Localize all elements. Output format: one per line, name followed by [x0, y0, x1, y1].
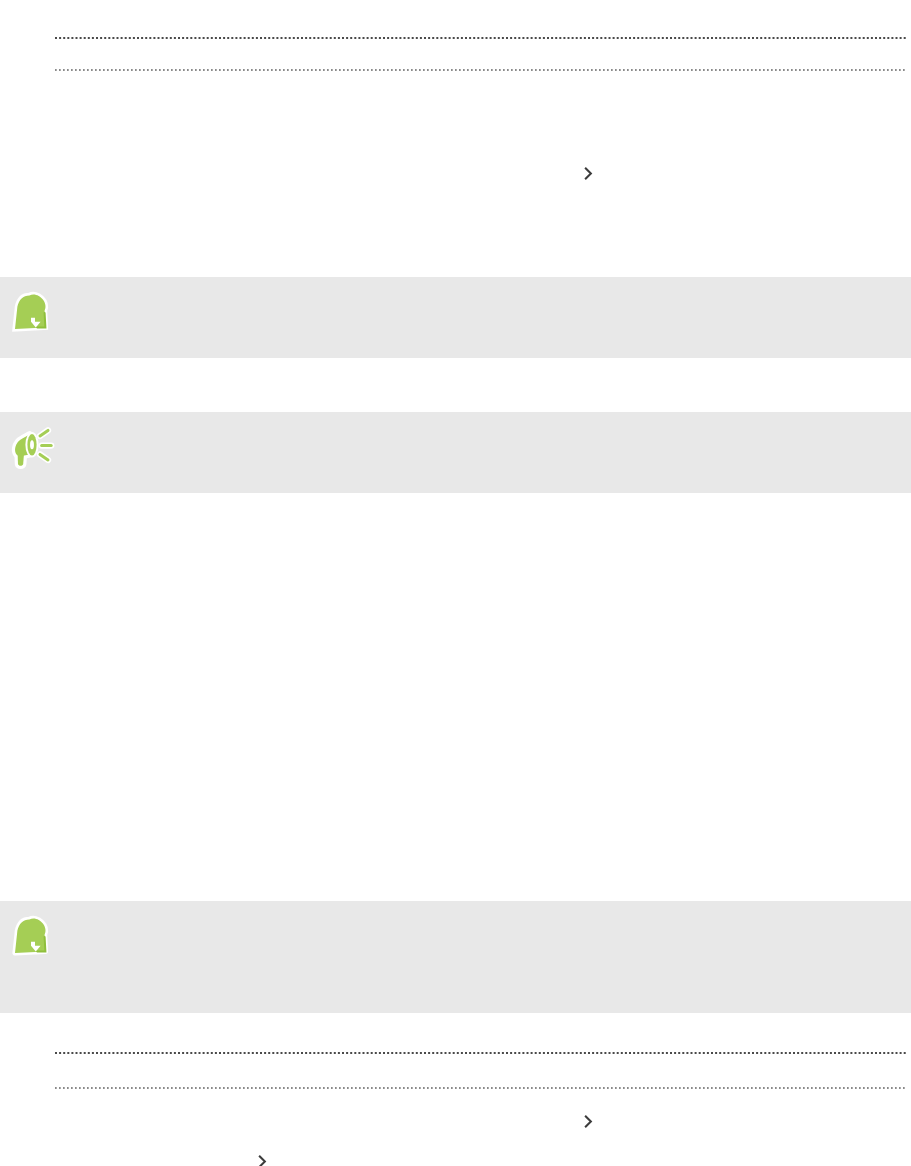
- button[interactable]: [0, 901, 911, 1013]
- button[interactable]: Note: [11, 293, 51, 333]
- button[interactable]: Next: [582, 1114, 594, 1129]
- button[interactable]: Next: [582, 166, 594, 181]
- button[interactable]: Announcement: [12, 428, 52, 468]
- button[interactable]: Note: [11, 917, 51, 957]
- button[interactable]: [0, 277, 911, 358]
- button[interactable]: Next: [256, 1154, 268, 1166]
- button[interactable]: [0, 412, 911, 493]
